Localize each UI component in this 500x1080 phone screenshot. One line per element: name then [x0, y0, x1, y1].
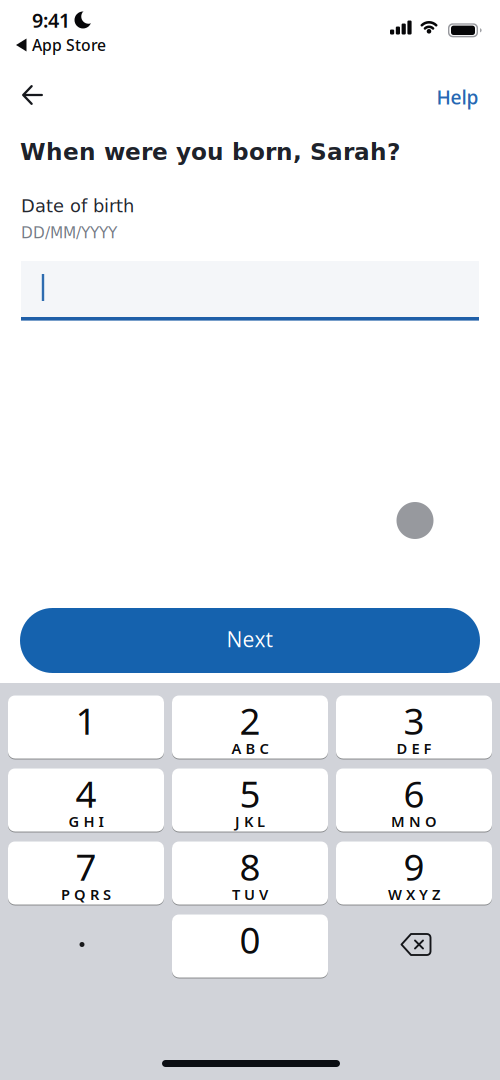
button[interactable]: Next: [20, 608, 480, 673]
staticText: G H I: [68, 811, 103, 831]
button[interactable]: 7: [8, 841, 164, 905]
button[interactable]: 0: [172, 914, 328, 978]
staticText: 7: [75, 841, 96, 891]
staticText: W X Y Z: [388, 884, 440, 904]
button[interactable]: 8: [172, 841, 328, 905]
staticText: Date of birth: [21, 196, 134, 216]
staticText: 4: [75, 768, 96, 818]
staticText: 6: [403, 768, 424, 818]
staticText: 9: [403, 841, 424, 891]
staticText: 0: [239, 914, 260, 964]
button[interactable]: 4: [8, 768, 164, 832]
staticText: DD/MM/YYYY: [21, 224, 117, 242]
staticText: D E F: [396, 738, 431, 758]
staticText: 9:41: [32, 7, 70, 33]
button[interactable]: Decimal point: [4, 913, 160, 976]
staticText: J K L: [235, 811, 265, 831]
button[interactable]: 1: [8, 695, 164, 759]
button[interactable]: Help: [436, 84, 478, 110]
button[interactable]: Back: [10, 75, 54, 115]
staticText: P Q R S: [61, 884, 111, 904]
button[interactable]: 9: [336, 841, 492, 905]
staticText: When were you born, Sarah?: [20, 138, 400, 165]
staticText: 2: [239, 695, 260, 745]
staticText: 1: [75, 695, 96, 745]
button[interactable]: 2: [172, 695, 328, 759]
button[interactable]: 3: [336, 695, 492, 759]
button[interactable]: Delete: [338, 913, 494, 976]
staticText: 3: [403, 695, 424, 745]
staticText: Help: [436, 84, 478, 110]
button[interactable]: 5: [172, 768, 328, 832]
staticText: Next: [226, 625, 273, 653]
button[interactable]: Back to App Store: [16, 34, 106, 56]
staticText: M N O: [391, 811, 437, 831]
staticText: A B C: [231, 738, 268, 758]
staticText: 5: [239, 768, 260, 818]
staticText: App Store: [32, 34, 106, 56]
staticText: 8: [239, 841, 260, 891]
staticText: T U V: [232, 884, 268, 904]
button[interactable]: Date of birth text field: [21, 258, 479, 320]
button[interactable]: 6: [336, 768, 492, 832]
